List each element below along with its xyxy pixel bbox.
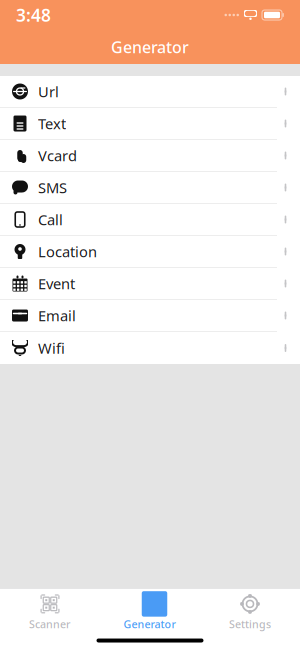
staticText: 3:48 — [16, 3, 51, 26]
staticText: Generator — [123, 617, 176, 631]
staticText: Text — [38, 114, 66, 133]
staticText: Scanner — [29, 617, 71, 631]
staticText: Url — [38, 82, 59, 101]
button[interactable]: Wifi — [0, 332, 300, 364]
button[interactable]: Settings — [200, 588, 300, 633]
staticText: Event — [38, 274, 75, 293]
button[interactable]: SMS — [0, 172, 300, 204]
button[interactable]: Scanner — [0, 588, 100, 633]
staticText: Settings — [229, 617, 271, 631]
staticText: SMS — [38, 178, 67, 197]
button[interactable]: Text — [0, 108, 300, 140]
staticText: Email — [38, 306, 76, 325]
button[interactable]: Call — [0, 204, 300, 236]
button[interactable]: Vcard — [0, 140, 300, 172]
staticText: Vcard — [38, 146, 77, 165]
button[interactable]: Url — [0, 76, 300, 108]
staticText: Generator — [111, 36, 189, 58]
button[interactable]: Email — [0, 300, 300, 332]
staticText: Wifi — [38, 338, 65, 358]
button[interactable]: Location — [0, 236, 300, 268]
button[interactable]: Event — [0, 268, 300, 300]
button[interactable]: Generator — [100, 588, 200, 633]
staticText: Location — [38, 242, 97, 261]
staticText: Call — [38, 210, 63, 229]
